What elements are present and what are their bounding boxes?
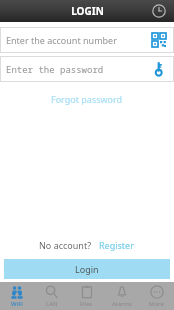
staticText: Enter the password: [6, 63, 150, 75]
button[interactable]: More: [139, 282, 174, 310]
staticText: Alarms: [112, 300, 132, 308]
button[interactable]: Files: [69, 282, 104, 310]
staticText: No account?: [39, 239, 92, 251]
button[interactable]: Login: [4, 259, 170, 279]
staticText: LAN: [46, 300, 58, 308]
staticText: LOGIN: [71, 4, 104, 18]
staticText: WiFi: [11, 300, 23, 308]
button[interactable]: Scan QR code: [150, 31, 168, 49]
button[interactable]: Enter the password: [0, 56, 174, 82]
staticText: More: [149, 300, 164, 308]
button[interactable]: WiFi: [0, 282, 34, 310]
staticText: Login: [75, 263, 99, 275]
staticText: Files: [80, 300, 93, 308]
staticText: Enter the account number: [6, 34, 150, 46]
staticText: Forgot password: [51, 93, 123, 105]
button[interactable]: Forgot password: [45, 90, 129, 108]
button[interactable]: LAN: [34, 282, 69, 310]
staticText: Register: [99, 239, 134, 251]
button[interactable]: Clock: [150, 2, 168, 20]
button[interactable]: Register: [97, 237, 136, 253]
button[interactable]: Show password: [150, 60, 168, 78]
button[interactable]: Alarms: [104, 282, 139, 310]
button[interactable]: Enter the account number: [0, 27, 174, 53]
